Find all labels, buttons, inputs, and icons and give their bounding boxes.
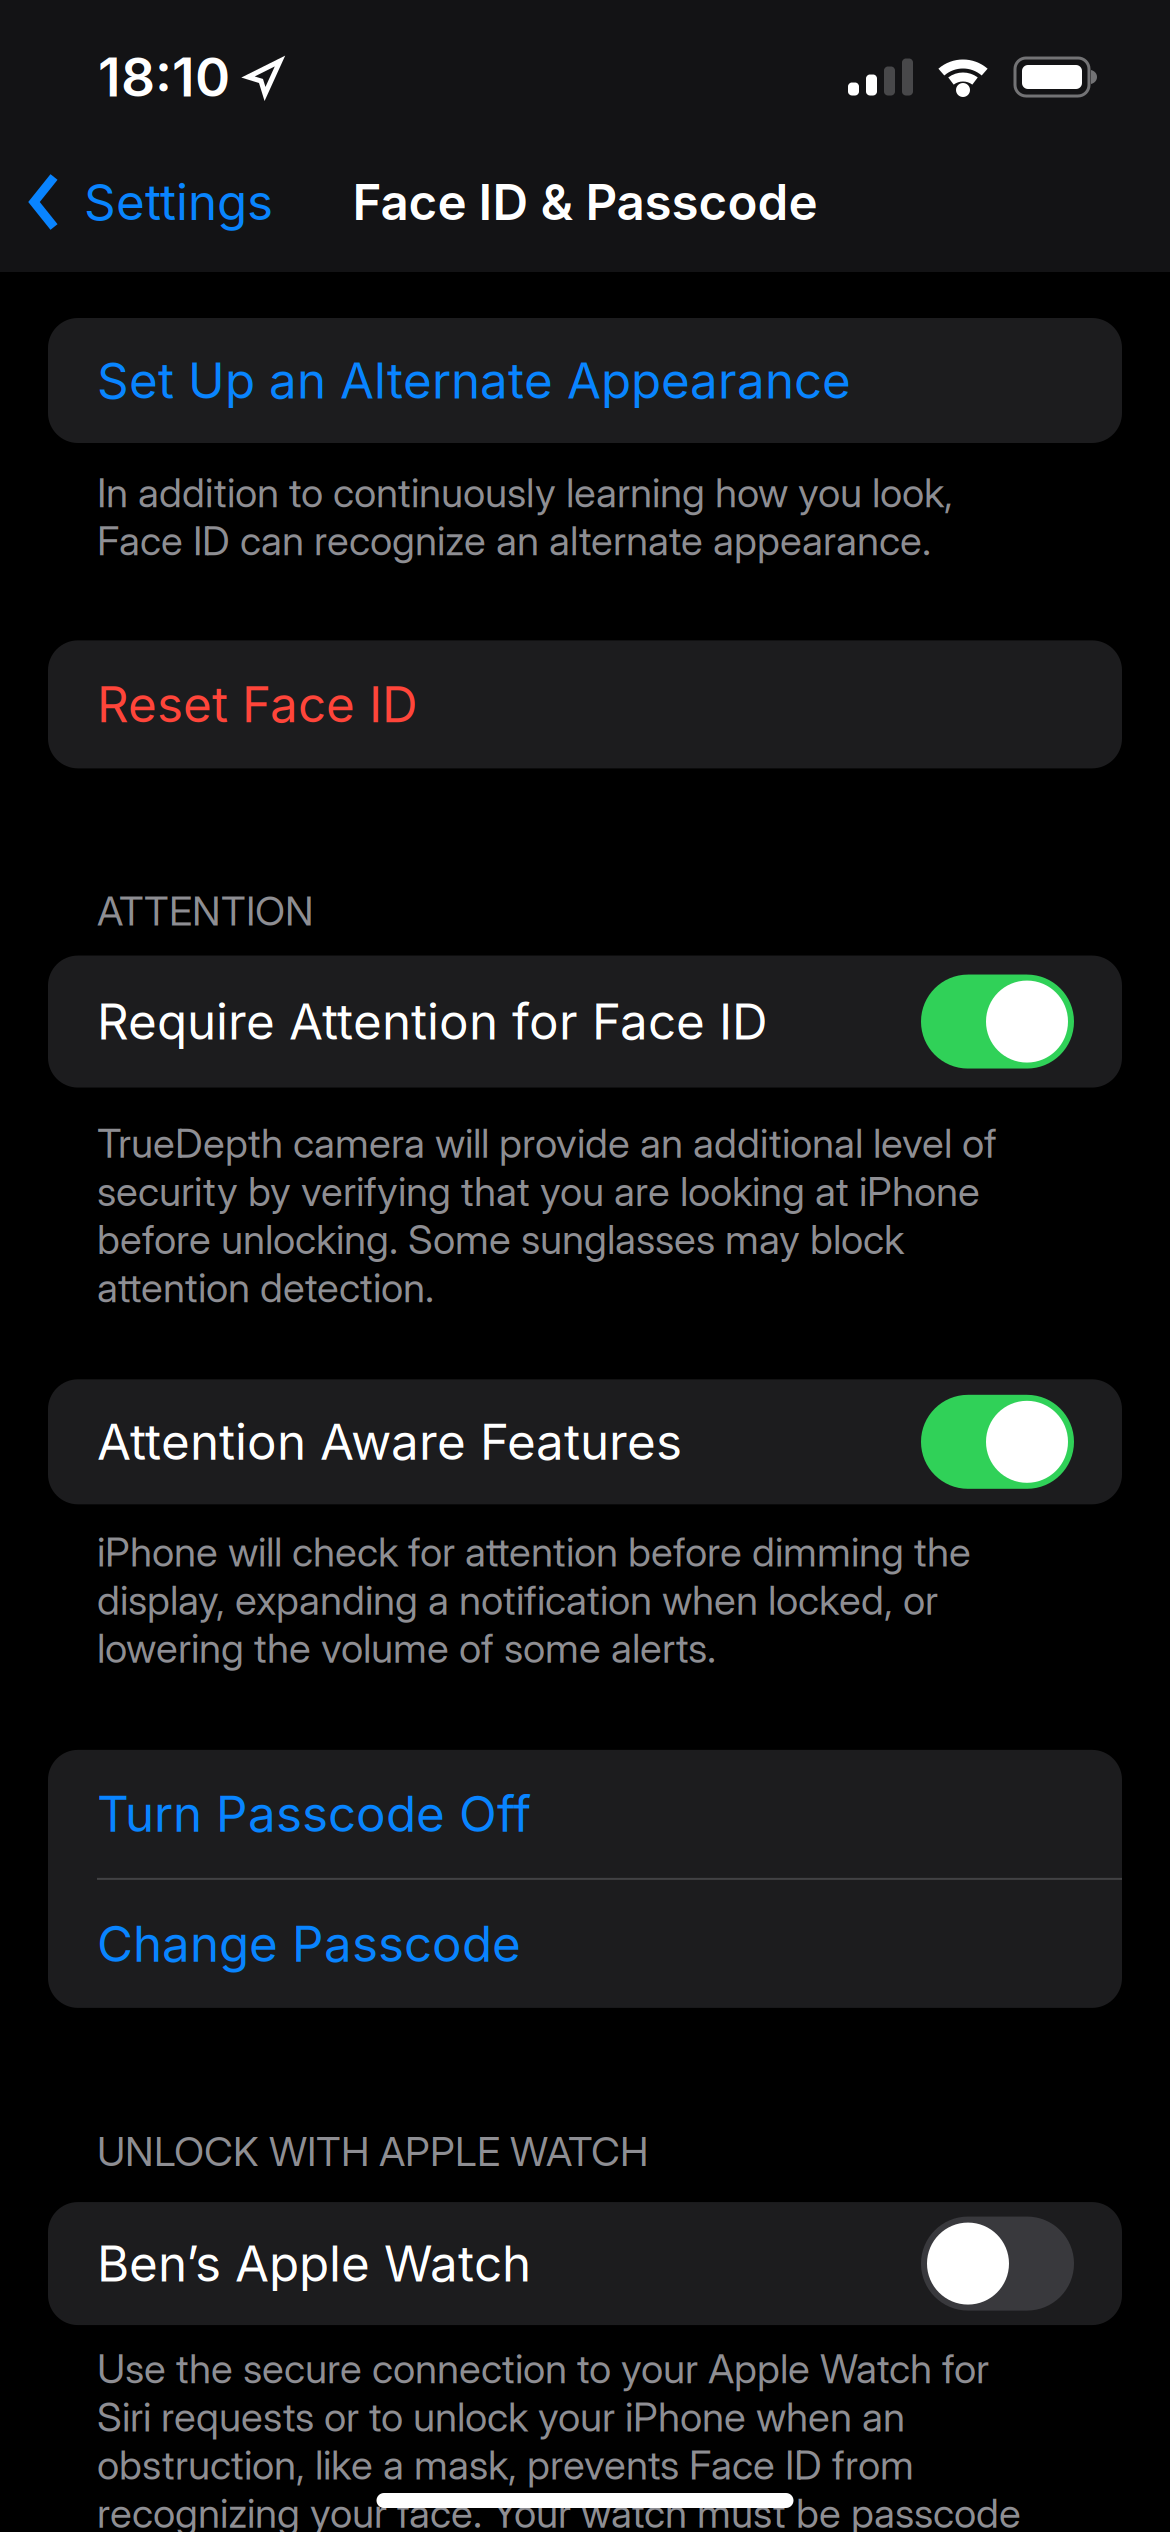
button[interactable]: Require Attention for Face ID (921, 975, 1074, 1069)
button[interactable]: Reset Face ID (48, 640, 1122, 768)
button[interactable]: Change Passcode (48, 1880, 1122, 2008)
button[interactable]: Attention Aware Features (921, 1395, 1074, 1489)
staticText: iPhone will check for attention before d… (97, 1528, 971, 1672)
button[interactable]: Back to Settings (0, 173, 273, 231)
staticText: 18:10 (98, 45, 230, 108)
staticText: Reset Face ID (97, 675, 418, 733)
staticText: ATTENTION (97, 887, 314, 935)
staticText: UNLOCK WITH APPLE WATCH (97, 2128, 648, 2175)
button[interactable]: Turn Passcode Off (48, 1750, 1122, 1878)
button[interactable]: Set Up an Alternate Appearance (48, 318, 1122, 443)
staticText: Settings (84, 173, 273, 231)
staticText: In addition to continuously learning how… (97, 469, 953, 564)
staticText: TrueDepth camera will provide an additio… (97, 1120, 997, 1311)
staticText: Change Passcode (97, 1915, 521, 1973)
staticText: Require Attention for Face ID (97, 992, 768, 1051)
staticText: Turn Passcode Off (97, 1785, 531, 1843)
staticText: Set Up an Alternate Appearance (97, 351, 851, 410)
button[interactable]: Ben’s Apple Watch (921, 2217, 1074, 2311)
staticText: Ben’s Apple Watch (97, 2234, 531, 2293)
staticText: Use the secure connection to your Apple … (97, 2345, 1021, 2532)
staticText: Attention Aware Features (97, 1413, 682, 1471)
staticText: Face ID & Passcode (352, 173, 817, 231)
